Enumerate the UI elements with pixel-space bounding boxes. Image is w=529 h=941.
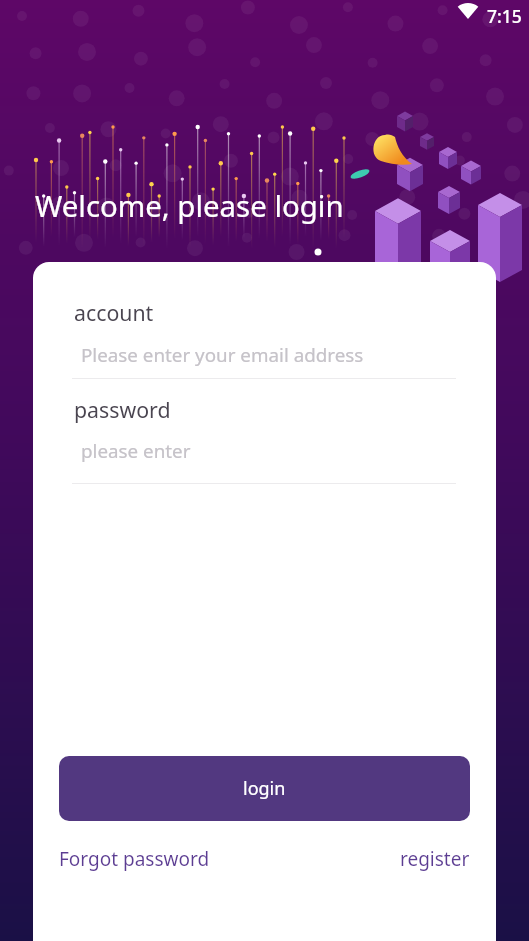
staticText: 7:15 xyxy=(487,4,522,28)
staticText: Welcome, please login xyxy=(35,186,344,226)
staticText: please enter xyxy=(81,438,191,464)
staticText: login xyxy=(243,776,286,801)
button[interactable]: Please enter your email address xyxy=(74,330,457,379)
button[interactable]: Forgot password xyxy=(59,846,210,872)
staticText: Please enter your email address xyxy=(81,342,364,368)
staticText: register xyxy=(400,846,470,872)
staticText: password xyxy=(74,395,171,424)
button[interactable]: please enter xyxy=(74,427,457,482)
staticText: Forgot password xyxy=(59,846,210,872)
button[interactable]: register xyxy=(400,846,470,872)
staticText: account xyxy=(74,298,154,327)
button[interactable]: login xyxy=(59,756,470,821)
